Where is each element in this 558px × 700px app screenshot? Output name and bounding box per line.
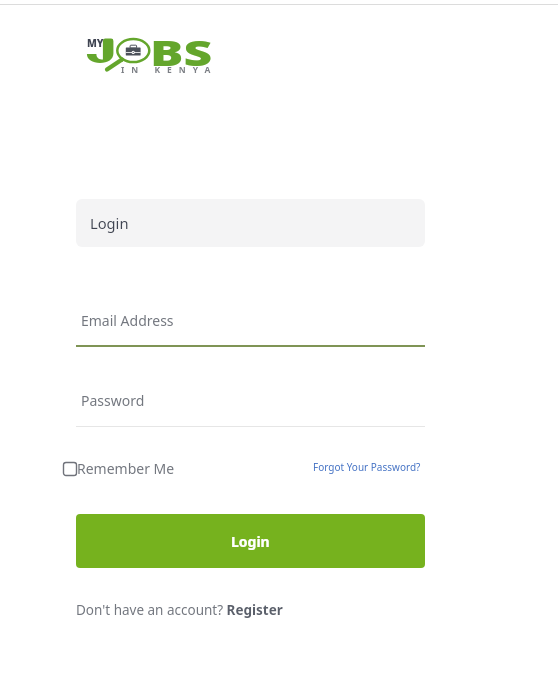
button[interactable]: Don't have an account? Register	[76, 601, 283, 619]
button[interactable]: Forgot Your Password?	[313, 460, 421, 474]
staticText: Forgot Your Password?	[313, 460, 421, 474]
staticText: Login	[231, 532, 270, 551]
button[interactable]: Login	[76, 514, 425, 568]
staticText: MY	[87, 36, 104, 50]
staticText: Don't have an account? Register	[76, 601, 283, 619]
staticText: IN KENYA	[121, 64, 218, 76]
button[interactable]: Remember Me	[63, 459, 175, 478]
staticText: Login	[90, 213, 129, 233]
staticText: BS	[150, 29, 213, 75]
staticText: Password	[81, 391, 145, 410]
staticText: Remember Me	[77, 459, 175, 478]
button[interactable]: Login	[76, 199, 425, 247]
staticText: Email Address	[81, 311, 174, 330]
